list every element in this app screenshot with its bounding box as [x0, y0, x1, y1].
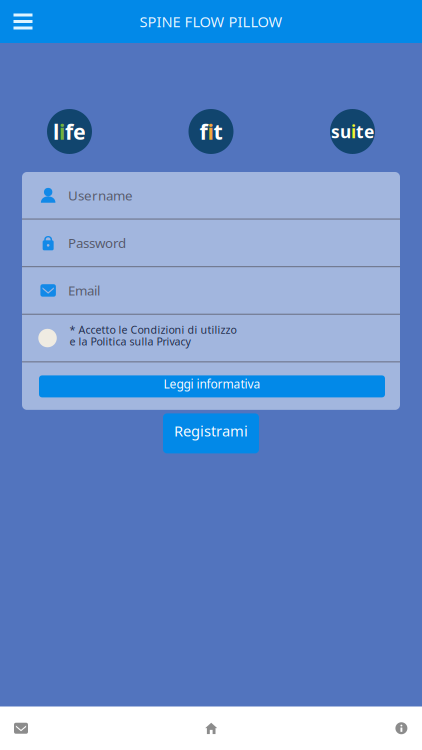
button[interactable]: Leggi informativa	[39, 375, 385, 397]
button[interactable]: Username	[22, 172, 400, 218]
staticText: Leggi informativa	[163, 376, 260, 392]
staticText: i	[207, 117, 213, 146]
staticText: i	[59, 117, 65, 146]
button[interactable]: Home	[191, 706, 231, 750]
button[interactable]: Email	[22, 267, 400, 314]
staticText: fe	[65, 117, 86, 146]
staticText: i	[351, 120, 356, 143]
staticText: Password	[68, 234, 126, 252]
button[interactable]: * Accetto le Condizioni di utilizzo	[22, 315, 400, 361]
button[interactable]: Info	[381, 706, 421, 750]
staticText: f	[199, 117, 207, 146]
button[interactable]: Password	[22, 220, 400, 266]
staticText: t	[213, 117, 222, 146]
staticText: e la Politica sulla Privacy	[69, 334, 190, 348]
staticText: Email	[68, 282, 100, 299]
button[interactable]: Registrami	[163, 413, 259, 453]
staticText: l	[53, 117, 59, 146]
staticText: te	[356, 120, 374, 143]
button[interactable]: Mail	[1, 706, 41, 750]
staticText: * Accetto le Condizioni di utilizzo	[69, 323, 236, 337]
staticText: Username	[68, 186, 133, 204]
staticText: Registrami	[174, 421, 248, 441]
staticText: su	[331, 120, 351, 143]
staticText: SPINE FLOW PILLOW	[139, 12, 282, 31]
button[interactable]: Menu	[6, 4, 40, 38]
